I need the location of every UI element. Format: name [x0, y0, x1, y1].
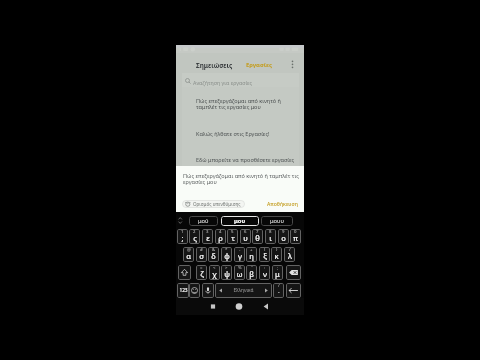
button[interactable]: &	[208, 247, 219, 262]
button[interactable]: ;	[272, 265, 283, 280]
staticText: π	[293, 233, 298, 243]
staticText: 9	[282, 229, 285, 234]
staticText: )	[276, 247, 278, 252]
button[interactable]: 2	[189, 229, 200, 244]
button[interactable]: :	[259, 265, 270, 280]
button[interactable]: Σημειώσεις	[189, 56, 239, 74]
staticText: .	[278, 288, 280, 295]
staticText: λ	[288, 251, 292, 261]
staticText: Εργασίες	[246, 61, 272, 69]
staticText: α	[186, 251, 191, 261]
button[interactable]: =	[196, 265, 207, 280]
button[interactable]: 6	[240, 229, 251, 244]
staticText: 3	[206, 229, 209, 234]
button[interactable]: 8	[265, 229, 276, 244]
button[interactable]: 3	[202, 229, 213, 244]
staticText: γ	[238, 251, 242, 261]
button[interactable]: Emoji	[189, 283, 200, 298]
button[interactable]: 5	[227, 229, 238, 244]
button[interactable]: 123	[177, 283, 189, 298]
button[interactable]: #	[196, 247, 207, 262]
button[interactable]: Αναζήτηση για εργασίες	[182, 73, 299, 87]
button[interactable]: /	[273, 283, 284, 298]
staticText: μου	[234, 217, 246, 225]
button[interactable]: Ελληνικά	[215, 283, 272, 298]
button[interactable]: -	[234, 247, 245, 262]
staticText: Ορισμός υπενθύμισης	[193, 201, 241, 207]
button[interactable]: Καλώς ήλθατε στις Εργασίες!	[182, 122, 299, 143]
staticText: μού	[198, 217, 209, 225]
button[interactable]: μού	[189, 216, 218, 226]
staticText: φ	[224, 251, 230, 261]
staticText: <	[213, 265, 216, 270]
staticText: +	[250, 247, 253, 252]
button[interactable]: 9	[278, 229, 289, 244]
staticText: (	[264, 247, 266, 252]
staticText: β	[249, 269, 254, 279]
button[interactable]: Εργασίες	[240, 56, 278, 74]
staticText: τ	[231, 233, 235, 243]
staticText: 123	[179, 287, 188, 294]
button[interactable]: 7	[252, 229, 263, 244]
button[interactable]: Recents	[206, 302, 220, 311]
staticText: Πώς επεξεργάζομαι από κινητό ή ταμπλέτ τ…	[183, 172, 299, 186]
button[interactable]: Voice input	[202, 283, 214, 298]
button[interactable]: %	[234, 265, 245, 280]
staticText: >	[225, 265, 228, 270]
staticText: ι	[269, 233, 272, 243]
button[interactable]: Ορισμός υπενθύμισης	[182, 200, 245, 208]
staticText: σ	[199, 251, 204, 261]
staticText: χ	[212, 269, 217, 279]
staticText: δ	[211, 251, 216, 261]
button[interactable]: Home	[232, 301, 246, 312]
staticText: ˝	[251, 265, 253, 270]
staticText: *	[225, 247, 228, 252]
button[interactable]: )	[271, 247, 282, 262]
staticText: %	[238, 265, 242, 270]
button[interactable]: >	[221, 265, 232, 280]
staticText: ρ	[218, 233, 223, 243]
staticText: ω	[236, 269, 243, 279]
staticText: &	[212, 247, 216, 252]
staticText: #	[200, 247, 203, 252]
button[interactable]: @	[183, 247, 194, 262]
button[interactable]: <	[209, 265, 220, 280]
button[interactable]: Back	[259, 302, 273, 311]
staticText: @	[187, 247, 191, 252]
staticText: Εδώ μπορείτε να προσθέσετε εργασίες	[196, 156, 298, 163]
button[interactable]: μου	[221, 216, 259, 226]
button[interactable]: Εδώ μπορείτε να προσθέσετε εργασίες	[182, 144, 299, 167]
staticText: ν	[263, 269, 267, 279]
staticText: ψ	[224, 269, 230, 279]
button[interactable]: 1	[177, 229, 188, 244]
staticText: ;	[277, 265, 279, 270]
button[interactable]: 4	[215, 229, 226, 244]
button[interactable]: ˝	[246, 265, 257, 280]
button[interactable]: 0	[290, 229, 301, 244]
staticText: -	[239, 247, 241, 252]
button[interactable]: Enter	[286, 283, 301, 298]
staticText: θ	[255, 233, 260, 243]
staticText: Σημειώσεις	[196, 61, 233, 70]
button[interactable]: +	[246, 247, 257, 262]
staticText: /	[289, 247, 291, 252]
button[interactable]: /	[284, 247, 295, 262]
staticText: η	[249, 251, 254, 261]
staticText: Αποθήκευση	[267, 201, 298, 208]
staticText: 8	[269, 229, 272, 234]
button[interactable]: Αποθήκευση	[266, 200, 299, 209]
button[interactable]: (	[259, 247, 270, 262]
button[interactable]: μουυ	[261, 216, 293, 226]
staticText: 1	[181, 229, 184, 234]
staticText: ;	[181, 233, 184, 243]
staticText: /	[278, 283, 280, 288]
button[interactable]: *	[221, 247, 232, 262]
staticText: Πώς επεξεργάζομαι από κινητό ή ταμπλέτ τ…	[196, 97, 298, 111]
button[interactable]: Backspace	[286, 265, 301, 280]
staticText: ς	[193, 233, 197, 243]
button[interactable]: Shift	[178, 265, 191, 280]
staticText: Αναζήτηση για εργασίες	[193, 79, 253, 86]
staticText: Ελληνικά	[233, 287, 254, 294]
button[interactable]: More options	[287, 58, 298, 71]
button[interactable]: Πώς επεξεργάζομαι από κινητό ή ταμπλέτ τ…	[182, 86, 299, 111]
